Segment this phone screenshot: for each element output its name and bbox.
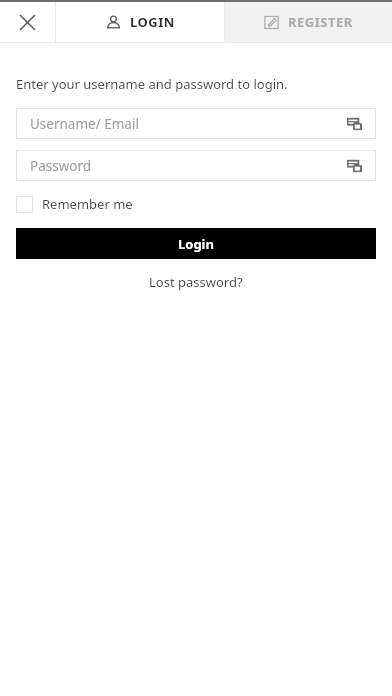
button[interactable]: Username/ Email	[16, 108, 376, 139]
staticText: Username/ Email	[30, 115, 139, 133]
staticText: Remember me	[42, 195, 133, 213]
staticText: LOGIN	[130, 13, 175, 31]
staticText: Lost password?	[149, 273, 243, 291]
button[interactable]: Close	[0, 2, 55, 42]
button[interactable]: Password	[16, 150, 376, 181]
button[interactable]: REGISTER	[225, 2, 392, 42]
button[interactable]: LOGIN	[56, 2, 224, 42]
staticText: REGISTER	[288, 13, 353, 31]
staticText: Login	[178, 235, 214, 253]
staticText: Password	[30, 157, 92, 175]
button[interactable]: Remember me	[16, 195, 133, 213]
button[interactable]: Login	[16, 228, 376, 259]
staticText: Enter your username and password to logi…	[16, 75, 288, 93]
button[interactable]: Lost password?	[145, 269, 247, 295]
